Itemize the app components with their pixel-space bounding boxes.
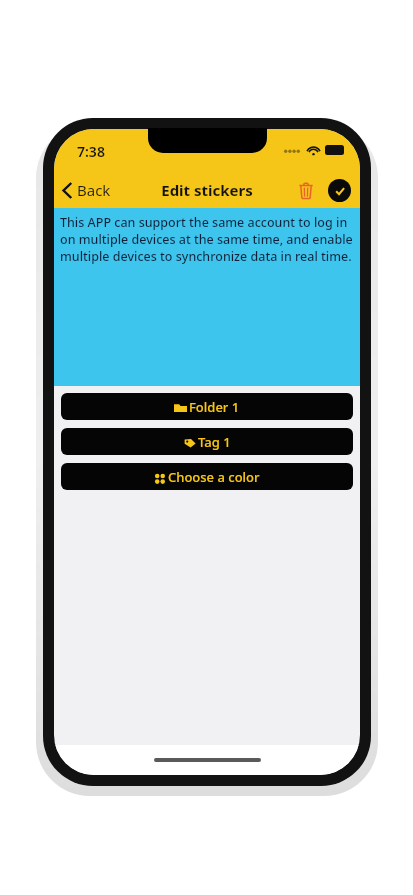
staticText: Folder 1 bbox=[189, 398, 240, 416]
button[interactable]: Folder 1 bbox=[61, 393, 353, 420]
button[interactable]: Delete bbox=[291, 175, 321, 205]
button[interactable]: Confirm bbox=[328, 179, 351, 202]
button[interactable]: Tag 1 bbox=[61, 428, 353, 455]
staticText: Back bbox=[77, 180, 111, 200]
staticText: Edit stickers bbox=[161, 180, 253, 200]
staticText: This APP can support the same account to… bbox=[60, 214, 356, 265]
staticText: Choose a color bbox=[168, 468, 260, 486]
staticText: 7:38 bbox=[77, 142, 105, 161]
button[interactable]: Choose a color bbox=[61, 463, 353, 490]
button[interactable]: Back bbox=[54, 174, 121, 206]
staticText: Tag 1 bbox=[198, 433, 231, 451]
